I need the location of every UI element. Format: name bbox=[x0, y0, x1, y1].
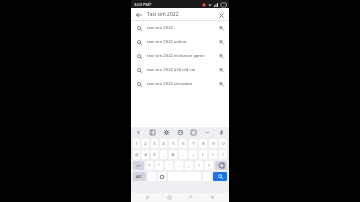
staticText: 7 bbox=[192, 141, 195, 147]
button[interactable]: ( bbox=[199, 150, 207, 159]
staticText: & bbox=[171, 152, 175, 158]
staticText: + bbox=[192, 152, 195, 158]
button[interactable]: taxi sim 2022 a30 old car bbox=[131, 63, 229, 77]
button[interactable]: taxi sim 2022 online bbox=[131, 35, 229, 49]
button[interactable]: Close bbox=[208, 193, 217, 202]
staticText: 5 bbox=[172, 141, 175, 147]
button[interactable]: Emoji bbox=[158, 172, 166, 181]
staticText: 2 bbox=[144, 141, 147, 147]
button[interactable]: taxi sim 2022 simulator bbox=[131, 77, 229, 91]
staticText: taxi sim 2022 evolution game bbox=[147, 53, 217, 59]
button[interactable]: / bbox=[219, 150, 227, 159]
button[interactable]: Search bbox=[213, 172, 227, 181]
staticText: taxi sim 2022 bbox=[147, 25, 217, 31]
button[interactable]: , bbox=[148, 172, 156, 181]
button[interactable]: : bbox=[175, 161, 183, 170]
staticText: " bbox=[158, 163, 160, 169]
button[interactable]: Back bbox=[131, 8, 229, 21]
staticText: @ bbox=[135, 152, 139, 158]
staticText: : bbox=[178, 163, 180, 169]
button[interactable]: $ bbox=[151, 150, 158, 159]
button[interactable]: Expand bbox=[134, 128, 143, 137]
button[interactable]: Back bbox=[186, 193, 195, 202]
button[interactable]: ; bbox=[185, 161, 193, 170]
button[interactable]: 7 bbox=[189, 139, 197, 148]
button[interactable]: Clear bbox=[217, 11, 225, 19]
staticText: 3:03 PM bbox=[134, 2, 150, 7]
staticText: taxi sim 2022 online bbox=[147, 39, 217, 45]
button[interactable]: Settings bbox=[162, 128, 171, 137]
staticText: 3 bbox=[153, 141, 156, 147]
button[interactable]: Home bbox=[165, 193, 174, 202]
staticText: Taxi sim 2022 bbox=[147, 11, 217, 18]
staticText: / bbox=[222, 152, 224, 158]
button[interactable]: More bbox=[203, 128, 212, 137]
button[interactable]: taxi sim 2022 evolution game bbox=[131, 49, 229, 63]
staticText: taxi sim 2022 a30 old car bbox=[147, 67, 217, 73]
button[interactable]: * bbox=[146, 161, 153, 170]
staticText: , bbox=[151, 174, 153, 180]
button[interactable]: & bbox=[169, 150, 177, 159]
staticText: ( bbox=[202, 152, 204, 158]
button[interactable]: Recents bbox=[143, 193, 152, 202]
staticText: 9 bbox=[212, 141, 215, 147]
button[interactable]: taxi sim 2022 bbox=[131, 21, 229, 35]
staticText: - bbox=[182, 152, 184, 158]
button[interactable]: ' bbox=[165, 161, 173, 170]
button[interactable]: ) bbox=[209, 150, 217, 159]
button[interactable]: 3 bbox=[151, 139, 158, 148]
button[interactable]: 8 bbox=[199, 139, 207, 148]
staticText: taxi sim 2022 simulator bbox=[147, 81, 217, 87]
button[interactable]: 4 bbox=[160, 139, 167, 148]
staticText: ' bbox=[169, 163, 170, 169]
staticText: ABC bbox=[136, 175, 143, 179]
button[interactable]: 2 bbox=[142, 139, 149, 148]
button[interactable]: + bbox=[189, 150, 197, 159]
button[interactable]: 1 bbox=[133, 139, 140, 148]
staticText: _ bbox=[163, 152, 165, 158]
staticText: * bbox=[148, 163, 151, 169]
staticText: ! bbox=[198, 163, 200, 169]
staticText: ) bbox=[212, 152, 214, 158]
staticText: 4 bbox=[162, 141, 165, 147]
button[interactable]: @ bbox=[133, 150, 140, 159]
button[interactable]: Clipboard bbox=[148, 128, 157, 137]
staticText: 6 bbox=[182, 141, 185, 147]
button[interactable]: 0 bbox=[219, 139, 227, 148]
staticText: ; bbox=[188, 163, 190, 169]
button[interactable]: 5 bbox=[169, 139, 177, 148]
button[interactable]: - bbox=[179, 150, 187, 159]
button[interactable]: =\< bbox=[133, 161, 144, 170]
button[interactable]: # bbox=[142, 150, 149, 159]
button[interactable]: _ bbox=[160, 150, 167, 159]
staticText: . bbox=[206, 174, 208, 180]
staticText: # bbox=[144, 152, 147, 158]
staticText: 0 bbox=[222, 141, 225, 147]
staticText: ? bbox=[208, 163, 210, 169]
button[interactable]: 6 bbox=[179, 139, 187, 148]
button[interactable]: " bbox=[155, 161, 163, 170]
button[interactable]: Backspace bbox=[215, 161, 227, 170]
button[interactable]: Back bbox=[135, 11, 143, 19]
button[interactable]: ? bbox=[205, 161, 213, 170]
staticText: 1 bbox=[135, 141, 138, 147]
staticText: 8 bbox=[202, 141, 205, 147]
button[interactable]: Voice input bbox=[217, 128, 226, 137]
staticText: =\< bbox=[136, 164, 141, 168]
button[interactable]: 9 bbox=[209, 139, 217, 148]
button[interactable]: Stickers bbox=[176, 128, 185, 137]
staticText: $ bbox=[153, 152, 156, 158]
button[interactable]: ! bbox=[195, 161, 203, 170]
button[interactable]: GIF bbox=[189, 128, 198, 137]
button[interactable]: ABC bbox=[133, 172, 146, 181]
